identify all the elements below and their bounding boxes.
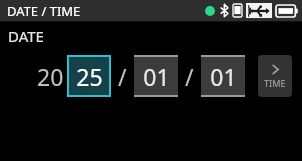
button[interactable]: 01 xyxy=(134,55,178,97)
staticText: 01 xyxy=(210,61,237,92)
staticText: DATE / TIME xyxy=(7,2,81,20)
other: USB connected xyxy=(246,3,272,18)
button[interactable]: TIME xyxy=(258,55,292,97)
button[interactable]: 01 xyxy=(201,55,245,97)
staticText: 25 xyxy=(76,61,103,92)
staticText: / xyxy=(185,61,194,92)
other: Device xyxy=(233,4,242,17)
staticText: TIME xyxy=(264,77,286,89)
other: Battery xyxy=(276,5,298,17)
staticText: DATE xyxy=(8,26,44,46)
other: Bluetooth xyxy=(220,4,229,17)
staticText: 20 xyxy=(37,61,64,92)
staticText: / xyxy=(118,61,127,92)
other: Status xyxy=(204,5,216,17)
staticText: 01 xyxy=(143,61,170,92)
button[interactable]: 25 xyxy=(67,55,111,97)
